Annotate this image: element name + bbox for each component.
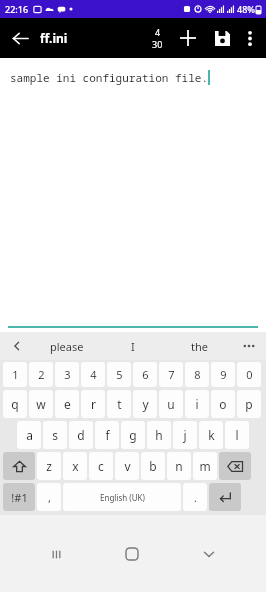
button[interactable]: 2 [29, 362, 53, 387]
button[interactable]: More suggestions [232, 332, 266, 360]
staticText: s [52, 427, 58, 443]
staticText: !#1 [11, 490, 28, 505]
button[interactable]: I [100, 332, 166, 360]
staticText: e [64, 396, 71, 412]
staticText: b [149, 458, 157, 474]
button[interactable]: Previous suggestions [0, 332, 34, 360]
staticText: 6 [142, 367, 149, 382]
button[interactable]: v [115, 452, 139, 480]
staticText: z [46, 458, 52, 474]
staticText: y [142, 396, 149, 412]
staticText: 30 [152, 38, 163, 50]
staticText: 7 [168, 367, 175, 382]
staticText: English (UK) [100, 492, 145, 503]
button[interactable]: d [69, 421, 93, 449]
button[interactable]: y [133, 390, 157, 418]
button[interactable]: f [95, 421, 119, 449]
button[interactable]: 4 [150, 26, 165, 50]
staticText: m [199, 458, 211, 474]
button[interactable]: Back [0, 18, 40, 58]
staticText: g [129, 427, 137, 443]
staticText: j [183, 427, 187, 443]
staticText: I [131, 339, 135, 354]
button[interactable]: Recents [36, 534, 76, 574]
staticText: please [50, 339, 84, 354]
staticText: a [26, 427, 33, 443]
button[interactable]: Back [189, 534, 229, 574]
button[interactable]: English (UK) [63, 483, 181, 511]
button[interactable]: 5 [107, 362, 131, 387]
staticText: f [105, 427, 110, 443]
staticText: 8 [194, 367, 201, 382]
staticText: 1 [12, 367, 19, 382]
button[interactable]: b [141, 452, 165, 480]
button[interactable]: u [159, 390, 183, 418]
button[interactable]: p [237, 390, 261, 418]
button[interactable]: l [225, 421, 249, 449]
staticText: c [98, 458, 104, 474]
button[interactable]: o [211, 390, 235, 418]
staticText: ff.ini [40, 30, 68, 46]
button[interactable]: j [173, 421, 197, 449]
button[interactable]: 0 [237, 362, 261, 387]
button[interactable]: e [55, 390, 79, 418]
button[interactable]: i [185, 390, 209, 418]
button[interactable]: Key [209, 483, 241, 511]
button[interactable]: 1 [3, 362, 27, 387]
staticText: w [36, 396, 46, 412]
button[interactable]: m [193, 452, 217, 480]
staticText: r [91, 396, 96, 412]
button[interactable]: r [81, 390, 105, 418]
button[interactable]: 9 [211, 362, 235, 387]
staticText: q [11, 396, 19, 412]
staticText: d [77, 427, 85, 443]
button[interactable]: k [199, 421, 223, 449]
button[interactable]: Key [219, 452, 251, 480]
button[interactable]: z [37, 452, 61, 480]
button[interactable]: Key [3, 452, 35, 480]
staticText: 4 [90, 367, 97, 382]
button[interactable]: Save [207, 23, 237, 53]
button[interactable]: 8 [185, 362, 209, 387]
button[interactable]: a [17, 421, 41, 449]
button[interactable]: !#1 [3, 483, 35, 511]
button[interactable]: w [29, 390, 53, 418]
staticText: 5 [116, 367, 123, 382]
staticText: n [175, 458, 183, 474]
button[interactable]: please [34, 332, 100, 360]
button[interactable]: , [37, 483, 61, 511]
staticText: . [194, 490, 197, 505]
staticText: 2 [38, 367, 45, 382]
staticText: o [219, 396, 227, 412]
button[interactable]: More options [237, 25, 263, 51]
button[interactable]: n [167, 452, 191, 480]
button[interactable]: g [121, 421, 145, 449]
staticText: 9 [220, 367, 227, 382]
staticText: sample ini configuration file. [10, 70, 208, 85]
staticText: h [155, 427, 163, 443]
staticText: 0 [246, 367, 253, 382]
button[interactable]: . [183, 483, 207, 511]
button[interactable]: c [89, 452, 113, 480]
staticText: 3 [64, 367, 71, 382]
button[interactable]: 7 [159, 362, 183, 387]
button[interactable]: Add [173, 23, 203, 53]
staticText: 4 [155, 26, 161, 38]
button[interactable]: 4 [81, 362, 105, 387]
button[interactable]: h [147, 421, 171, 449]
button[interactable]: 6 [133, 362, 157, 387]
button[interactable]: the [166, 332, 232, 360]
button[interactable]: q [3, 390, 27, 418]
button[interactable]: Home [112, 534, 152, 574]
button[interactable]: 3 [55, 362, 79, 387]
button[interactable]: s [43, 421, 67, 449]
staticText: i [195, 396, 199, 412]
staticText: l [235, 427, 239, 443]
button[interactable]: x [63, 452, 87, 480]
button[interactable]: t [107, 390, 131, 418]
staticText: u [167, 396, 175, 412]
staticText: p [245, 396, 253, 412]
staticText: 22:16 [5, 3, 29, 15]
staticText: the [191, 339, 208, 354]
staticText: , [48, 490, 51, 505]
